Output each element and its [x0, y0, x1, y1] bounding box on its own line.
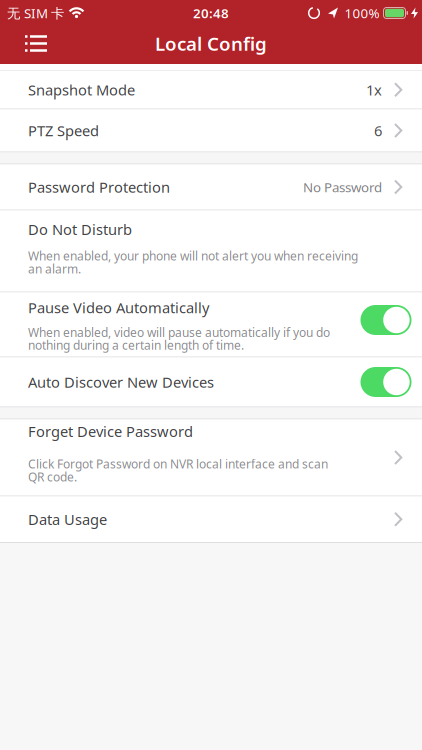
- staticText: an alarm.: [28, 261, 81, 277]
- button[interactable]: Data Usage: [0, 496, 422, 542]
- button[interactable]: PTZ Speed: [0, 109, 422, 151]
- staticText: Do Not Disturb: [28, 219, 132, 239]
- staticText: When enabled, video will pause automatic…: [28, 324, 330, 340]
- button[interactable]: Snapshot Mode: [0, 71, 422, 108]
- staticText: Data Usage: [28, 509, 107, 529]
- staticText: Pause Video Automatically: [28, 298, 209, 317]
- staticText: PTZ Speed: [28, 121, 99, 140]
- staticText: 20:48: [193, 4, 229, 22]
- staticText: 6: [374, 121, 382, 140]
- button[interactable]: [360, 305, 411, 335]
- staticText: 无 SIM 卡: [7, 4, 64, 22]
- staticText: No Password: [303, 178, 382, 196]
- staticText: 1x: [366, 80, 382, 99]
- staticText: Password Protection: [28, 177, 170, 197]
- staticText: Forget Device Password: [28, 421, 193, 441]
- staticText: Auto Discover New Devices: [28, 372, 214, 392]
- staticText: 100%: [344, 4, 379, 22]
- staticText: When enabled, your phone will not alert …: [28, 248, 358, 264]
- staticText: QR code.: [28, 469, 77, 485]
- staticText: nothing during a certain length of time.: [28, 337, 244, 353]
- staticText: Local Config: [155, 31, 267, 56]
- button[interactable]: Password Protection: [0, 164, 422, 209]
- button[interactable]: [360, 367, 411, 397]
- staticText: Snapshot Mode: [28, 80, 135, 99]
- button[interactable]: Forget Device Password: [0, 419, 422, 495]
- button[interactable]: [0, 35, 47, 52]
- staticText: Click Forgot Password on NVR local inter…: [28, 456, 328, 472]
